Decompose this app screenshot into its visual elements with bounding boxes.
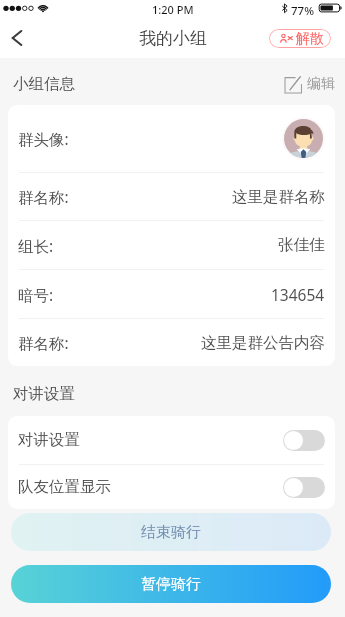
button[interactable]: 暂停骑行: [11, 565, 331, 603]
button[interactable]: 队友位置显示: [8, 465, 335, 509]
staticText: 对讲设置: [18, 430, 80, 450]
button[interactable]: 编辑: [285, 75, 335, 93]
staticText: 结束骑行: [141, 523, 201, 542]
staticText: 群名称:: [18, 332, 69, 353]
staticText: 这里是群名称: [232, 187, 325, 207]
staticText: 小组信息: [13, 74, 75, 94]
button[interactable]: 群名称:: [8, 173, 335, 220]
button[interactable]: 对讲设置: [8, 416, 335, 464]
staticText: 这里是群公告内容: [201, 333, 325, 353]
staticText: 暂停骑行: [141, 575, 201, 594]
button[interactable]: 群头像:: [8, 105, 335, 172]
staticText: 77%: [291, 3, 314, 18]
staticText: 暗号:: [18, 284, 54, 305]
staticText: 我的小组: [139, 28, 207, 49]
staticText: 张佳佳: [278, 235, 325, 255]
button[interactable]: 解散: [269, 29, 331, 48]
staticText: 解散: [296, 30, 324, 48]
button[interactable]: 组长:: [8, 221, 335, 269]
staticText: 对讲设置: [13, 384, 75, 404]
staticText: 组长:: [18, 235, 54, 256]
staticText: 134654: [271, 284, 325, 305]
button[interactable]: 群名称:: [8, 319, 335, 366]
button[interactable]: 暗号:: [8, 270, 335, 318]
button[interactable]: 结束骑行: [11, 513, 331, 551]
staticText: 1:20 PM: [152, 2, 194, 17]
staticText: 编辑: [307, 75, 335, 93]
staticText: 群头像:: [18, 128, 69, 149]
staticText: 群名称:: [18, 186, 69, 207]
button[interactable]: Back: [0, 18, 34, 58]
staticText: 队友位置显示: [18, 477, 111, 497]
